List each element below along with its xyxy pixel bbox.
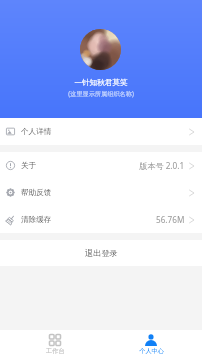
staticText: 56.76M bbox=[156, 214, 185, 225]
staticText: 一针知秋君莫笑 bbox=[0, 78, 202, 88]
staticText: 帮助反馈 bbox=[21, 188, 52, 198]
button[interactable]: 个人详情 bbox=[0, 118, 202, 145]
button[interactable]: 退出登录 bbox=[0, 240, 202, 266]
button[interactable]: 帮助反馈 bbox=[0, 179, 202, 206]
button[interactable]: 关于 bbox=[0, 152, 202, 179]
staticText: 退出登录 bbox=[85, 248, 118, 258]
staticText: 清除缓存 bbox=[21, 215, 52, 225]
staticText: 个人中心 bbox=[139, 347, 164, 355]
staticText: 个人详情 bbox=[21, 127, 52, 137]
button[interactable]: 个人中心 bbox=[127, 330, 175, 359]
staticText: 工作台 bbox=[46, 347, 65, 355]
staticText: 版本号 2.0.1 bbox=[139, 160, 185, 171]
staticText: 关于 bbox=[21, 161, 37, 171]
button[interactable]: 工作台 bbox=[31, 330, 79, 359]
staticText: (这里显示所属组织名称) bbox=[0, 89, 202, 97]
button[interactable]: 清除缓存 bbox=[0, 206, 202, 233]
